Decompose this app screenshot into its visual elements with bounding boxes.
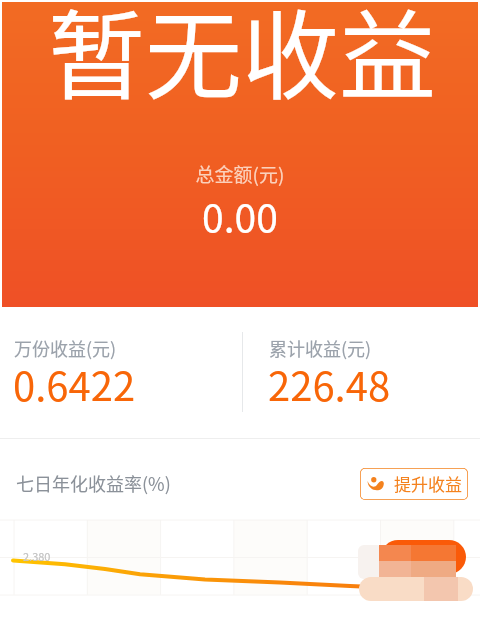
staticText: 总金额(元) — [0, 160, 480, 188]
staticText: 累计收益(元) — [269, 335, 372, 361]
staticText: 暂无收益 — [2, 0, 480, 118]
staticText: 七日年化收益率(%) — [16, 470, 171, 496]
staticText: 0.6422 — [13, 355, 136, 413]
staticText: 提升收益 — [394, 471, 462, 496]
button[interactable]: 累计收益(元) — [243, 307, 480, 438]
button[interactable]: 万份收益(元) — [0, 307, 241, 438]
staticText: 万份收益(元) — [14, 335, 117, 361]
staticText: 2.380 — [23, 548, 51, 564]
staticText: 226.48 — [268, 355, 391, 413]
other: Yu E Bao — [367, 476, 384, 493]
staticText: 0.00 — [0, 188, 480, 244]
button[interactable]: Yu E Bao — [360, 468, 468, 500]
